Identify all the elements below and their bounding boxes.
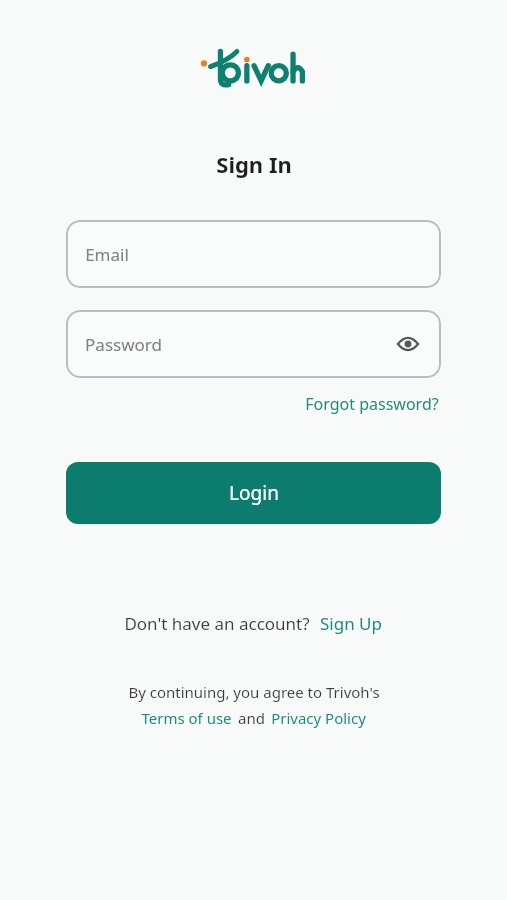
staticText: and	[238, 708, 265, 728]
staticText: Login	[229, 480, 279, 506]
button[interactable]: Terms of use	[140, 708, 233, 728]
staticText: Email	[85, 243, 129, 266]
button[interactable]: Login	[66, 462, 441, 524]
staticText: Terms of use	[141, 708, 232, 728]
button[interactable]: Sign Up	[318, 610, 384, 637]
button[interactable]: Password	[66, 310, 441, 378]
staticText: Don't have an account?	[124, 612, 310, 635]
staticText: By continuing, you agree to Trivoh's	[128, 682, 380, 702]
staticText: Password	[85, 333, 162, 356]
button[interactable]: Email	[66, 220, 441, 288]
other: Trivoh logo	[199, 45, 309, 91]
staticText: Sign Up	[320, 612, 382, 635]
staticText: Privacy Policy	[271, 708, 366, 728]
button[interactable]: Show password	[391, 327, 425, 361]
button[interactable]: Forgot password?	[303, 391, 441, 417]
staticText: Forgot password?	[305, 393, 439, 415]
button[interactable]: Privacy Policy	[270, 708, 367, 728]
staticText: Sign In	[216, 149, 292, 179]
